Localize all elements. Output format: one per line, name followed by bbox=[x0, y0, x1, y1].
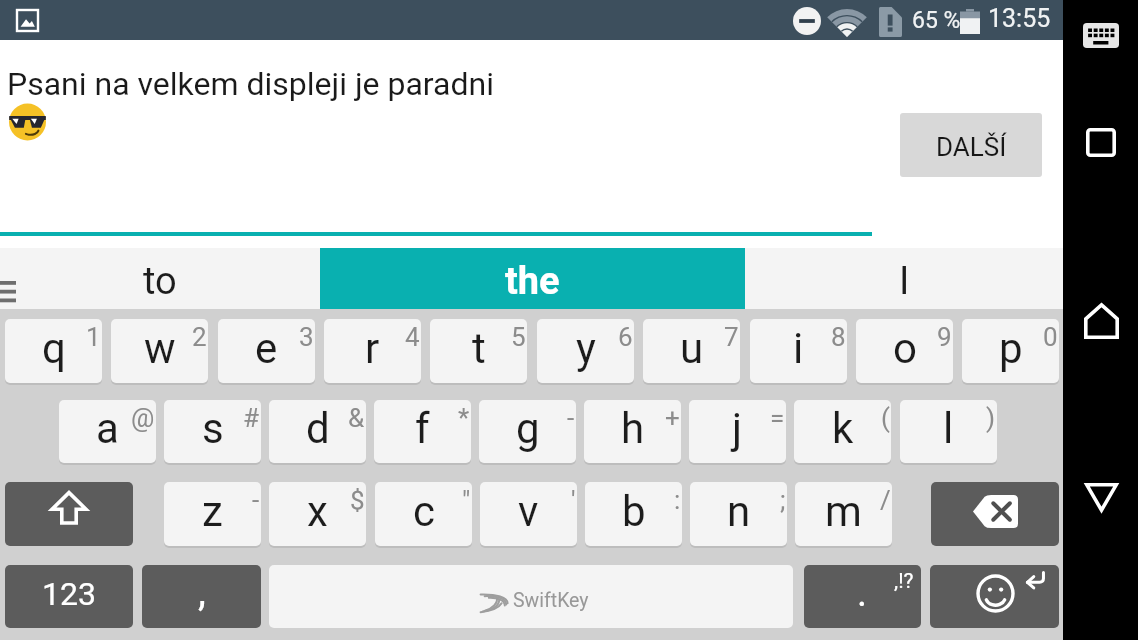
staticText: # bbox=[243, 403, 260, 433]
button[interactable]: I bbox=[745, 248, 1063, 309]
staticText: q bbox=[42, 324, 66, 373]
button[interactable]: 123 bbox=[5, 565, 133, 628]
button[interactable]: e bbox=[218, 319, 315, 383]
staticText: 5 bbox=[511, 322, 526, 352]
button[interactable]: w bbox=[111, 319, 208, 383]
staticText: Psani na velkem displeji je paradni bbox=[7, 65, 494, 103]
button[interactable]: . bbox=[804, 565, 921, 628]
staticText: I bbox=[899, 259, 910, 304]
staticText: to bbox=[143, 259, 177, 304]
staticText: , bbox=[198, 568, 206, 615]
button[interactable]: q bbox=[5, 319, 102, 383]
button[interactable]: y bbox=[537, 319, 634, 383]
staticText: @ bbox=[131, 403, 155, 433]
button[interactable]: k bbox=[794, 400, 891, 463]
button[interactable]: Backspace bbox=[931, 482, 1059, 546]
staticText: ; bbox=[780, 485, 786, 515]
staticText: k bbox=[832, 404, 854, 453]
staticText: ,!? bbox=[894, 569, 914, 594]
button[interactable]: d bbox=[269, 400, 366, 463]
staticText: w bbox=[144, 324, 176, 373]
button[interactable]: r bbox=[324, 319, 421, 383]
staticText: + bbox=[665, 403, 680, 433]
staticText: - bbox=[567, 403, 575, 433]
staticText: the bbox=[505, 259, 560, 304]
button[interactable]: DALŠÍ bbox=[900, 113, 1042, 177]
staticText: v bbox=[518, 487, 539, 536]
staticText: s bbox=[202, 404, 224, 453]
staticText: p bbox=[999, 324, 1023, 373]
staticText: ( bbox=[881, 403, 890, 433]
staticText: r bbox=[365, 324, 380, 373]
button[interactable]: Keyboard menu bbox=[0, 248, 26, 308]
staticText: x bbox=[307, 487, 328, 536]
button[interactable]: Change keyboard bbox=[1063, 0, 1138, 72]
staticText: & bbox=[348, 403, 365, 433]
button[interactable]: Home bbox=[1063, 280, 1138, 360]
button[interactable]: t bbox=[430, 319, 527, 383]
staticText: n bbox=[727, 487, 751, 536]
button[interactable]: i bbox=[750, 319, 847, 383]
button[interactable]: m bbox=[795, 482, 892, 546]
button[interactable]: b bbox=[585, 482, 682, 546]
staticText: 3 bbox=[299, 322, 314, 352]
staticText: 1 bbox=[86, 322, 101, 352]
button[interactable]: Hide keyboard bbox=[1063, 460, 1138, 540]
staticText: 7 bbox=[724, 322, 739, 352]
staticText: 4 bbox=[405, 322, 420, 352]
button[interactable]: Recent apps bbox=[1063, 100, 1138, 186]
staticText: z bbox=[202, 487, 223, 536]
staticText: SwiftKey bbox=[513, 589, 589, 612]
button[interactable]: o bbox=[856, 319, 953, 383]
staticText: ' bbox=[571, 485, 576, 515]
button[interactable]: to bbox=[0, 248, 320, 309]
button[interactable]: n bbox=[690, 482, 787, 546]
staticText: * bbox=[458, 403, 470, 433]
staticText: j bbox=[732, 404, 743, 453]
button[interactable]: Shift bbox=[5, 482, 133, 546]
staticText: u bbox=[680, 324, 704, 373]
staticText: h bbox=[621, 404, 645, 453]
button[interactable]: , bbox=[142, 565, 261, 628]
button[interactable]: the bbox=[320, 248, 745, 309]
button[interactable]: g bbox=[479, 400, 576, 463]
staticText: $ bbox=[350, 485, 365, 515]
staticText: 123 bbox=[42, 575, 96, 613]
staticText: . bbox=[857, 571, 868, 616]
button[interactable]: v bbox=[480, 482, 577, 546]
staticText: 0 bbox=[1043, 322, 1058, 352]
button[interactable]: z bbox=[164, 482, 261, 546]
staticText: d bbox=[306, 404, 330, 453]
button[interactable]: x bbox=[269, 482, 366, 546]
staticText: m bbox=[825, 487, 862, 536]
button[interactable]: s bbox=[164, 400, 261, 463]
staticText: : bbox=[674, 485, 681, 515]
staticText: / bbox=[880, 485, 891, 515]
button[interactable]: p bbox=[962, 319, 1059, 383]
staticText: f bbox=[415, 404, 430, 453]
button[interactable]: Emoji, Enter bbox=[930, 565, 1059, 628]
staticText: g bbox=[516, 404, 540, 453]
staticText: 65 % bbox=[912, 7, 961, 34]
button[interactable]: h bbox=[584, 400, 681, 463]
button[interactable]: c bbox=[375, 482, 472, 546]
staticText: i bbox=[793, 324, 804, 373]
staticText: t bbox=[472, 324, 486, 373]
staticText: o bbox=[893, 324, 917, 373]
button[interactable]: j bbox=[689, 400, 786, 463]
staticText: b bbox=[622, 487, 646, 536]
staticText: 9 bbox=[937, 322, 952, 352]
button[interactable]: u bbox=[643, 319, 740, 383]
staticText: 13:55 bbox=[988, 4, 1051, 33]
staticText: l bbox=[943, 404, 954, 453]
staticText: DALŠÍ bbox=[936, 132, 1007, 162]
button[interactable]: f bbox=[374, 400, 471, 463]
button[interactable]: a bbox=[59, 400, 156, 463]
staticText: 8 bbox=[831, 322, 846, 352]
button[interactable]: l bbox=[900, 400, 997, 463]
staticText: " bbox=[462, 485, 471, 515]
staticText: e bbox=[255, 324, 278, 373]
staticText: 6 bbox=[618, 322, 633, 352]
button[interactable]: Space bbox=[269, 565, 793, 628]
staticText: - bbox=[252, 485, 260, 515]
